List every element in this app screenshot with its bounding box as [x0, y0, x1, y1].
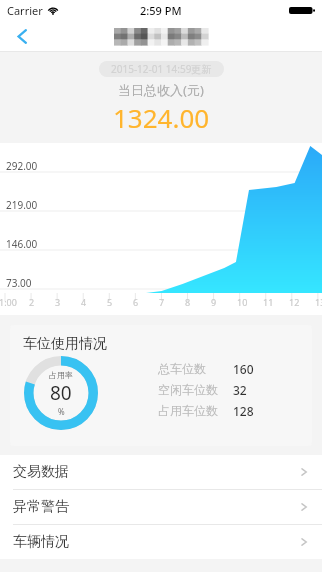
- staticText: 3: [55, 296, 61, 308]
- button[interactable]: Back: [4, 20, 40, 52]
- staticText: 219.00: [6, 198, 38, 212]
- staticText: 5: [107, 296, 113, 308]
- staticText: 空闲车位数: [158, 382, 218, 397]
- staticText: %: [58, 406, 65, 417]
- staticText: 2: [29, 296, 35, 308]
- staticText: 总车位数: [158, 361, 206, 376]
- staticText: 11: [263, 296, 274, 308]
- staticText: 7: [159, 296, 165, 308]
- staticText: 交易数据: [13, 463, 69, 481]
- staticText: 8: [185, 296, 191, 308]
- staticText: 2:59 PM: [140, 3, 182, 18]
- staticText: Carrier: [7, 3, 43, 18]
- staticText: 80: [50, 380, 72, 406]
- staticText: 12: [289, 296, 300, 308]
- button[interactable]: 车辆情况: [0, 525, 322, 559]
- staticText: 异常警告: [13, 498, 69, 516]
- button[interactable]: 异常警告: [0, 490, 322, 524]
- staticText: 73.00: [6, 276, 32, 290]
- staticText: 9: [211, 296, 217, 308]
- staticText: 10: [237, 296, 248, 308]
- button[interactable]: 交易数据: [0, 455, 322, 489]
- staticText: 4: [81, 296, 87, 308]
- staticText: 6: [133, 296, 139, 308]
- staticText: 292.00: [6, 159, 38, 173]
- staticText: 1:00: [0, 296, 17, 308]
- staticText: 13: [315, 296, 322, 308]
- staticText: 占用率: [49, 370, 73, 380]
- staticText: 128: [233, 403, 254, 419]
- staticText: 车位使用情况: [23, 335, 107, 353]
- staticText: 车辆情况: [13, 533, 69, 551]
- staticText: 当日总收入(元): [118, 81, 204, 99]
- button[interactable]: 车位使用情况: [10, 325, 312, 446]
- staticText: 2015-12-01 14:59更新: [111, 62, 212, 76]
- staticText: 占用车位数: [158, 403, 218, 418]
- staticText: 160: [233, 361, 254, 377]
- staticText: 146.00: [6, 237, 38, 251]
- staticText: 32: [233, 382, 247, 398]
- staticText: 1324.00: [113, 100, 210, 135]
